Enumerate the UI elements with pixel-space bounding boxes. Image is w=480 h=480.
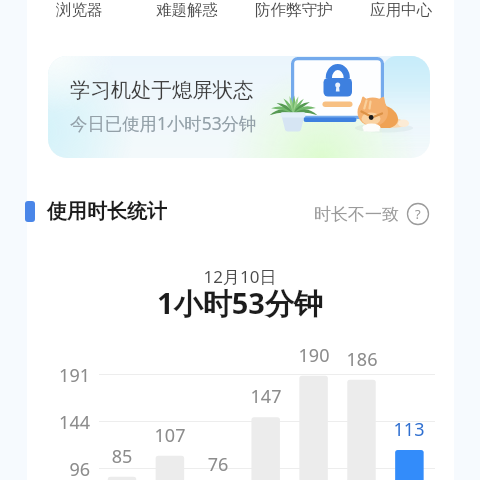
staticText: 186 [336, 347, 388, 372]
staticText: 使用时长统计 [47, 199, 167, 224]
staticText: 1小时53分钟 [0, 283, 480, 323]
staticText: 190 [288, 343, 340, 368]
button[interactable]: 防作弊守护 [240, 0, 347, 20]
staticText: ? [415, 205, 421, 223]
staticText: 76 [192, 452, 244, 477]
button[interactable]: 浏览器 [25, 0, 133, 20]
staticText: 12月10日 [0, 265, 480, 288]
staticText: 应用中心 [370, 0, 432, 20]
staticText: 防作弊守护 [255, 0, 333, 20]
staticText: 学习机处于熄屏状态 [70, 77, 254, 103]
staticText: 浏览器 [56, 0, 103, 20]
staticText: 113 [383, 417, 435, 442]
staticText: 今日已使用1小时53分钟 [70, 111, 257, 135]
staticText: 191 [44, 363, 90, 388]
staticText: 147 [240, 384, 292, 409]
button[interactable]: 学习机处于熄屏状态 [48, 56, 430, 158]
staticText: 85 [96, 444, 148, 469]
staticText: 144 [44, 410, 90, 435]
staticText: 107 [144, 423, 196, 448]
staticText: 96 [44, 457, 90, 480]
button[interactable]: 难题解惑 [133, 0, 240, 20]
staticText: 难题解惑 [156, 0, 218, 20]
button[interactable]: 应用中心 [347, 0, 454, 20]
other: Help [407, 203, 429, 225]
staticText: 时长不一致 [314, 204, 399, 225]
button[interactable]: 时长不一致 [314, 203, 429, 225]
